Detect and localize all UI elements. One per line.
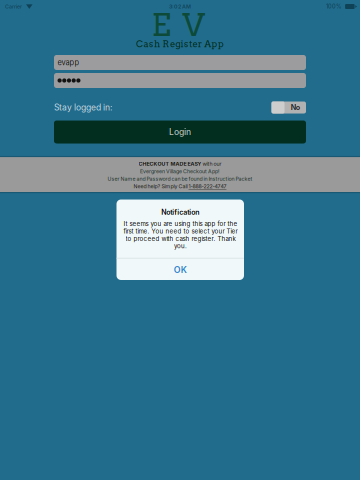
staticText: It seems you are using this app for the … — [123, 220, 237, 250]
staticText: Evergreen Village Checkout App! — [140, 168, 220, 174]
staticText: Cash Register App — [136, 38, 224, 50]
button[interactable]: Stay logged in: No — [271, 101, 306, 113]
button[interactable]: Login — [54, 120, 306, 143]
staticText: OK — [174, 264, 187, 275]
staticText: 3:02 AM — [169, 3, 191, 10]
staticText: evapp — [57, 58, 79, 67]
button[interactable]: OK — [116, 258, 244, 281]
staticText: Notification — [161, 208, 199, 216]
staticText: 100% — [326, 3, 342, 10]
staticText: No — [291, 103, 300, 112]
staticText: Carrier — [5, 3, 22, 10]
staticText: EV — [151, 6, 204, 43]
staticText: Need help? Simply Call 1-888-222-4747 — [133, 183, 226, 189]
staticText: Stay logged in: — [54, 102, 112, 113]
staticText: User Name and Password can be found in I… — [107, 176, 252, 182]
staticText: CHECKOUT MADE EASY with our — [138, 161, 221, 167]
staticText: Login — [169, 127, 191, 137]
